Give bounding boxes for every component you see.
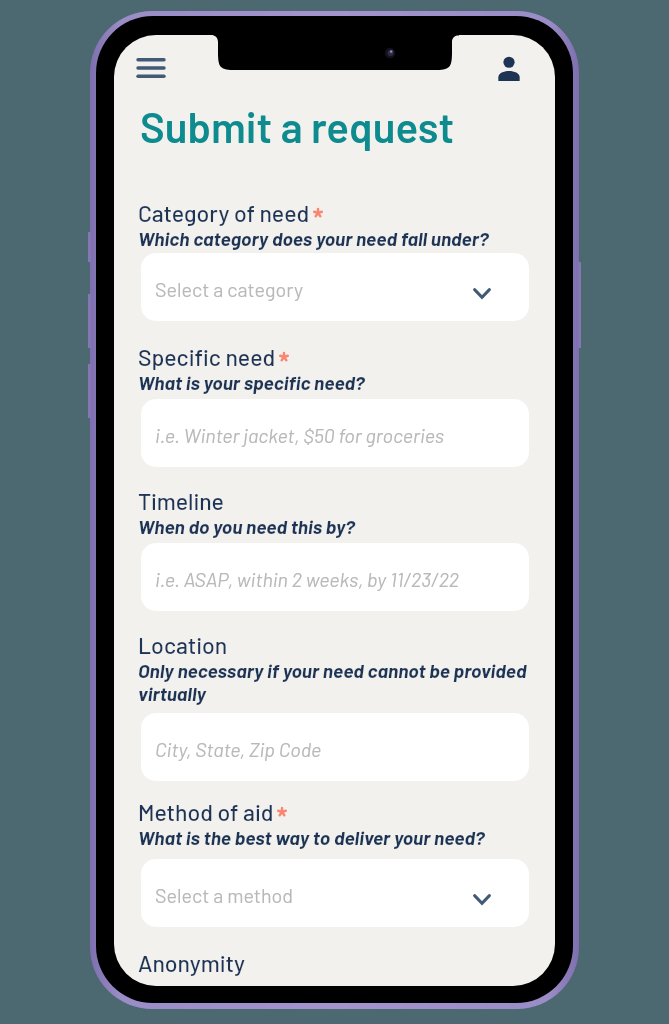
staticText: Only necessary if your need cannot be pr… — [138, 659, 532, 705]
button[interactable]: Menu — [138, 53, 172, 83]
staticText: Category of need — [138, 199, 310, 227]
button[interactable]: i.e. ASAP, within 2 weeks, by 11/23/22 — [141, 543, 529, 611]
staticText: What is your specific need? — [138, 371, 532, 394]
button[interactable]: Select a category — [141, 253, 529, 321]
staticText: Timeline — [138, 487, 224, 515]
staticText: Anonymity — [138, 949, 245, 977]
staticText: i.e. ASAP, within 2 weeks, by 11/23/22 — [155, 567, 460, 591]
button[interactable]: City, State, Zip Code — [141, 713, 529, 781]
staticText: Select a category — [155, 277, 303, 301]
button[interactable]: Account — [492, 51, 526, 85]
button[interactable]: Select a method — [141, 859, 529, 927]
button[interactable]: i.e. Winter jacket, $50 for groceries — [141, 399, 529, 467]
staticText: What is the best way to deliver your nee… — [138, 826, 532, 849]
staticText: Method of aid — [138, 798, 274, 826]
staticText: When do you need this by? — [138, 515, 532, 538]
staticText: Select a method — [155, 883, 293, 907]
staticText: Submit a request — [140, 101, 455, 151]
staticText: Location — [138, 631, 228, 659]
staticText: Which category does your need fall under… — [138, 227, 532, 250]
staticText: Specific need — [138, 343, 276, 371]
staticText: i.e. Winter jacket, $50 for groceries — [155, 423, 445, 447]
staticText: City, State, Zip Code — [155, 737, 322, 761]
